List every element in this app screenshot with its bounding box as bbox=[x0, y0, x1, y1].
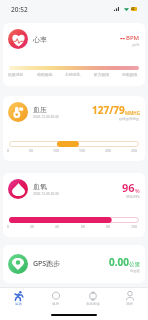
staticText: 40 bbox=[55, 224, 59, 229]
staticText: 血压 bbox=[33, 105, 47, 114]
staticText: 100 bbox=[53, 148, 59, 153]
staticText: 运动 bbox=[15, 302, 22, 306]
staticText: 95%-99% bbox=[126, 195, 140, 199]
staticText: 0.00 bbox=[109, 255, 129, 269]
button[interactable]: Health bbox=[37, 291, 74, 306]
button[interactable]: 血压 bbox=[3, 96, 145, 161]
staticText: GPS跑步 bbox=[33, 259, 61, 269]
staticText: 42% bbox=[131, 7, 137, 11]
staticText: 心率 bbox=[33, 35, 47, 44]
staticText: 0 bbox=[7, 224, 9, 229]
staticText: 表盘商城 bbox=[86, 302, 100, 306]
staticText: 2022-12-30 20:30 bbox=[33, 115, 59, 119]
staticText: 200 bbox=[105, 148, 111, 153]
button[interactable]: Profile bbox=[111, 291, 148, 306]
staticText: 0 bbox=[7, 148, 9, 153]
staticText: 127/79 bbox=[92, 103, 125, 117]
staticText: % bbox=[135, 187, 140, 194]
staticText: 血氧 bbox=[33, 182, 47, 191]
staticText: 总里程 bbox=[130, 269, 140, 273]
staticText: MMHG bbox=[125, 110, 140, 116]
staticText: 次/分 bbox=[132, 43, 140, 47]
staticText: 脂肪燃烧 bbox=[37, 72, 53, 77]
staticText: 热量消耗 bbox=[8, 72, 24, 77]
staticText: -- bbox=[120, 32, 126, 43]
staticText: 健康 bbox=[52, 302, 59, 306]
staticText: 耐力极限 bbox=[94, 72, 110, 77]
staticText: 无氧极限 bbox=[122, 72, 138, 77]
staticText: 150 bbox=[79, 148, 85, 153]
button[interactable]: 血氧 bbox=[3, 173, 145, 237]
staticText: 我的 bbox=[126, 302, 133, 306]
staticText: 20:52 bbox=[11, 5, 28, 14]
staticText: 心肺强化 bbox=[65, 72, 81, 77]
button[interactable]: Watch faces bbox=[74, 291, 111, 306]
staticText: 96 bbox=[122, 180, 135, 195]
button[interactable]: GPS跑步 bbox=[3, 245, 145, 283]
staticText: 100 bbox=[131, 224, 137, 229]
button[interactable]: 心率 bbox=[3, 23, 145, 86]
staticText: 收缩压/舒张压 bbox=[119, 117, 140, 121]
staticText: 80 bbox=[106, 224, 110, 229]
staticText: 公里 bbox=[129, 261, 140, 268]
staticText: BPM bbox=[126, 34, 140, 42]
staticText: 2022-12-30 20:30 bbox=[33, 192, 59, 196]
staticText: 50 bbox=[29, 148, 33, 153]
staticText: 250 bbox=[131, 148, 137, 153]
button[interactable]: Sports bbox=[0, 291, 37, 306]
staticText: 60 bbox=[81, 224, 85, 229]
staticText: 20 bbox=[30, 224, 34, 229]
